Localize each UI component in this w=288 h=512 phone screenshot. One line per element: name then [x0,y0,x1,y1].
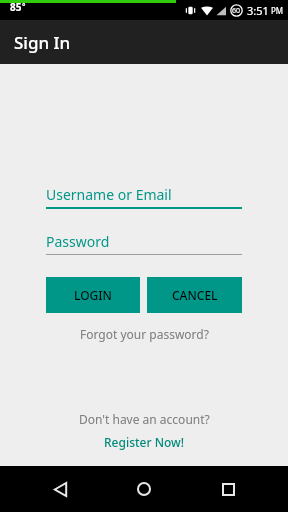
staticText: CANCEL [172,287,218,303]
button[interactable]: CANCEL [147,277,242,313]
button[interactable]: Forgot your password? [46,323,242,345]
staticText: 60 [232,6,241,16]
staticText: 3:51 [247,3,269,18]
staticText: LOGIN [74,287,112,303]
staticText: Register Now! [104,434,185,450]
staticText: Password [46,232,110,251]
staticText: Username or Email [46,185,172,204]
button[interactable]: Home [120,466,168,512]
button[interactable]: Recent apps [204,466,252,512]
button[interactable]: Username or Email field [46,184,242,209]
button[interactable]: Password field [46,231,242,255]
button[interactable]: Back [36,466,84,512]
staticText: 85 [10,0,22,14]
staticText: PM [271,5,284,16]
staticText: ° [22,0,26,11]
staticText: Forgot your password? [80,326,209,342]
staticText: Sign In [14,31,71,54]
button[interactable]: Register Now! [98,432,191,452]
button[interactable]: LOGIN [46,277,140,313]
staticText: Don't have an account? [79,411,210,427]
